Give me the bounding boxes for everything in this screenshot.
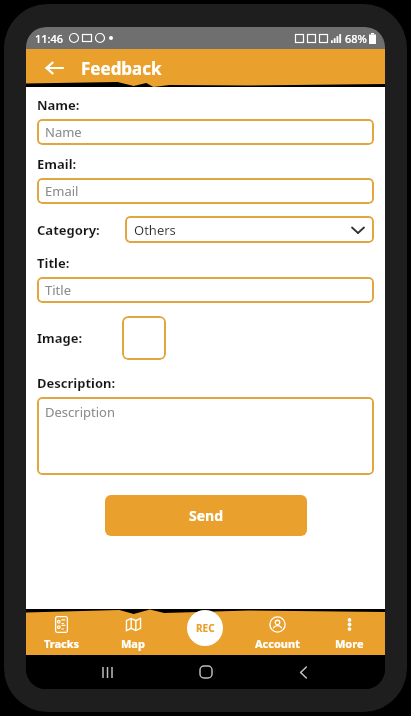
staticText: Description — [45, 403, 115, 421]
staticText: Title — [45, 281, 71, 299]
staticText: Tracks — [44, 636, 80, 651]
button[interactable]: Back — [39, 53, 69, 83]
staticText: Name: — [37, 96, 80, 114]
staticText: REC — [196, 621, 215, 635]
staticText: Others — [134, 221, 176, 239]
button[interactable]: Name — [37, 119, 374, 145]
button[interactable]: More — [313, 609, 385, 655]
button[interactable]: Email — [37, 178, 374, 204]
staticText: Email: — [37, 155, 77, 173]
button[interactable]: Back — [288, 657, 318, 687]
staticText: Account — [255, 636, 300, 651]
button[interactable]: Send — [105, 495, 307, 536]
button[interactable]: Account — [241, 609, 313, 655]
button[interactable]: Add image — [122, 316, 166, 360]
button[interactable]: Recents — [93, 657, 123, 687]
staticText: Email — [45, 182, 79, 200]
staticText: 68% — [345, 31, 367, 46]
staticText: Description: — [37, 374, 116, 392]
staticText: 11:46 — [35, 31, 64, 46]
staticText: More — [335, 636, 364, 651]
staticText: Send — [189, 506, 224, 525]
button[interactable]: Title — [37, 277, 374, 303]
button[interactable]: REC — [187, 610, 223, 646]
staticText: Map — [121, 636, 145, 651]
staticText: Title: — [37, 254, 70, 272]
button[interactable]: Description — [37, 397, 374, 475]
button[interactable]: Others — [125, 216, 374, 243]
button[interactable]: Tracks — [26, 609, 97, 655]
button[interactable]: Home — [191, 657, 221, 687]
staticText: Name — [45, 123, 82, 141]
button[interactable]: Map — [97, 609, 169, 655]
staticText: Feedback — [81, 57, 162, 80]
staticText: Image: — [37, 329, 83, 347]
staticText: Category: — [37, 221, 100, 239]
